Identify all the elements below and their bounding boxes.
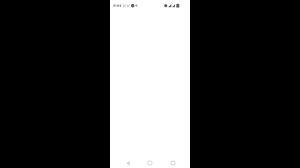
- button[interactable]: Recent apps: [167, 154, 179, 168]
- button[interactable]: Home: [144, 154, 156, 168]
- button[interactable]: Back: [121, 154, 133, 168]
